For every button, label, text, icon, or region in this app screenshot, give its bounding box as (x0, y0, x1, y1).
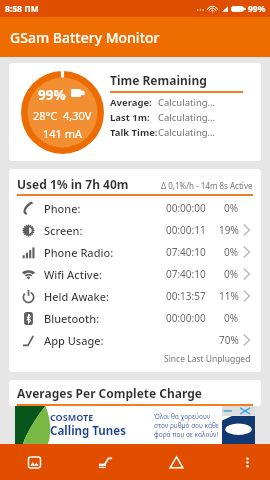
staticText: Time Remaining (110, 72, 207, 88)
staticText: 0% (224, 245, 239, 259)
staticText: Calling Tunes (50, 423, 126, 439)
staticText: 28°C 4,30V (33, 108, 92, 123)
staticText: Calculating… (158, 126, 216, 139)
staticText: 19% (219, 223, 239, 237)
staticText: Used 1% in 7h 40m (17, 176, 129, 192)
button[interactable]: Phone: (9, 197, 261, 219)
staticText: Όλοι θα χορεύουν (154, 412, 210, 421)
staticText: 141 mA (43, 126, 83, 141)
staticText: Last 1m: (110, 111, 150, 124)
staticText: 11% (219, 289, 239, 303)
staticText: 0% (224, 267, 239, 281)
staticText: 99% (38, 86, 66, 100)
button[interactable]: Phone Radio: (9, 241, 261, 263)
staticText: 00:00:11 (166, 223, 206, 237)
button[interactable]: Delta statistics (148, 444, 204, 480)
staticText: Wifi Active: (44, 267, 102, 282)
staticText: 70% (219, 333, 239, 347)
button[interactable]: Wifi Active: (9, 263, 261, 285)
staticText: 8:58 ПM (5, 3, 39, 15)
staticText: Δ 0,1%/h - 14m 8s Active (161, 180, 253, 191)
staticText: Phone: (44, 201, 81, 216)
button[interactable]: More options (224, 444, 270, 480)
staticText: Since Last Unplugged (164, 353, 251, 365)
staticText: Screen: (44, 223, 83, 238)
staticText: στον ρυθμό σου κάθε (154, 421, 219, 430)
staticText: GSam Battery Monitor (10, 28, 160, 47)
staticText: COSMOTE (50, 411, 94, 423)
staticText: 0% (224, 201, 239, 215)
staticText: Average: (110, 96, 152, 109)
button[interactable]: Bluetooth: (9, 307, 261, 329)
staticText: 99% (248, 3, 266, 15)
button[interactable]: Screenshots (6, 444, 62, 480)
button[interactable]: App Usage: (9, 329, 261, 351)
staticText: 00:13:57 (166, 289, 206, 303)
staticText: φορά που σε καλούν! (154, 430, 219, 439)
staticText: Calculating… (158, 96, 216, 109)
staticText: App Usage: (44, 333, 104, 348)
staticText: Calculating… (158, 111, 216, 124)
button[interactable]: Screen: (9, 219, 261, 241)
staticText: 00:00:00 (166, 311, 206, 325)
staticText: 07:40:10 (166, 267, 206, 281)
staticText: Averages Per Complete Charge (17, 385, 203, 401)
button[interactable]: Battery usage chart (77, 444, 133, 480)
staticText: Talk Time: (110, 126, 158, 139)
staticText: 00:00:00 (166, 201, 206, 215)
staticText: 0% (224, 311, 239, 325)
staticText: Phone Radio: (44, 245, 114, 260)
staticText: 07:40:10 (166, 245, 206, 259)
staticText: Held Awake: (44, 289, 110, 304)
staticText: Bluetooth: (44, 311, 100, 326)
button[interactable]: Held Awake: (9, 285, 261, 307)
